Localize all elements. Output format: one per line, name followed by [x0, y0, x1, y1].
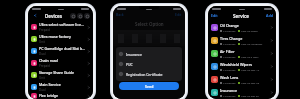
staticText: Main Service: [39, 82, 61, 87]
button[interactable]: PC GameEdge dual Slot box: [28, 45, 93, 57]
staticText: Next on Today: [241, 29, 258, 32]
staticText: Insurance: [220, 88, 238, 93]
staticText: 12 months: [223, 81, 236, 84]
staticText: Dual: [39, 88, 46, 92]
staticText: Tires Change: [220, 36, 243, 41]
staticText: Next on Mar 14: [241, 68, 260, 71]
staticText: 12 months: [223, 94, 236, 97]
button[interactable]: Insurance: [116, 49, 182, 59]
staticText: Registration Certificate: [126, 72, 163, 77]
staticText: Prepaid: [39, 64, 50, 68]
button[interactable]: Air Filter: [208, 47, 276, 60]
staticText: Edit: [211, 13, 218, 18]
button[interactable]: Flex bridge: [28, 93, 93, 99]
button[interactable]: Edit: [211, 13, 218, 18]
staticText: 12 months: [223, 68, 236, 71]
button[interactable]: Insurance: [208, 86, 276, 99]
button[interactable]: Back: [31, 12, 38, 19]
staticText: Prepaid: [39, 28, 50, 32]
staticText: 12 months: [223, 42, 236, 45]
staticText: 12 months: [223, 55, 236, 58]
staticText: Next on Mar 09: [241, 81, 260, 84]
staticText: Back: [116, 12, 124, 17]
button[interactable]: Registration Certificate: [116, 69, 182, 79]
staticText: 12 months: [223, 29, 236, 32]
button[interactable]: Windshield Wipers: [208, 60, 276, 73]
staticText: PUC: [126, 62, 133, 67]
button[interactable]: Ultra muse factory: [28, 33, 93, 45]
staticText: Next on Yesterday: [241, 42, 263, 45]
staticText: Air Filter: [220, 49, 235, 54]
staticText: Ultra muse factory: [39, 34, 71, 39]
staticText: Add: [266, 13, 273, 18]
button[interactable]: Back: [116, 12, 124, 17]
button[interactable]: Edit: [175, 12, 182, 17]
staticText: Dual: [39, 52, 46, 56]
staticText: Next on Feb 28: [241, 94, 259, 97]
staticText: Chain road: [39, 58, 58, 63]
button[interactable]: Add: [84, 13, 90, 19]
button[interactable]: Chain road: [28, 57, 93, 69]
staticText: Service: [233, 13, 250, 19]
button[interactable]: Storage Share Guide: [28, 69, 93, 81]
staticText: Send: [145, 84, 154, 89]
button[interactable]: Tires Change: [208, 34, 276, 47]
staticText: Edit: [175, 12, 182, 17]
button[interactable]: Filter: [77, 13, 83, 19]
button[interactable]: Ultra select software license: [28, 21, 93, 33]
staticText: Ultra select software license: [39, 22, 86, 27]
staticText: Select Option: [135, 21, 164, 27]
staticText: Unit: [39, 76, 45, 80]
staticText: Oil Change: [220, 23, 239, 28]
button[interactable]: Wash Lens: [208, 73, 276, 86]
staticText: Flex bridge: [39, 93, 58, 98]
staticText: Devices: [45, 13, 63, 19]
staticText: Storage Share Guide: [39, 70, 75, 75]
button[interactable]: Add: [266, 13, 273, 18]
staticText: Insurance: [126, 52, 142, 57]
staticText: Windshield Wipers: [220, 62, 252, 67]
staticText: Unit: [39, 40, 45, 44]
staticText: Wash Lens: [220, 75, 239, 80]
button[interactable]: Oil Change: [208, 21, 276, 34]
button[interactable]: Send: [119, 82, 179, 90]
button[interactable]: PUC: [116, 59, 182, 69]
button[interactable]: Main Service: [28, 81, 93, 93]
button[interactable]: Search: [70, 13, 76, 19]
staticText: Next on 2 days: [241, 55, 259, 58]
staticText: PC GameEdge dual Slot box: [39, 46, 86, 51]
